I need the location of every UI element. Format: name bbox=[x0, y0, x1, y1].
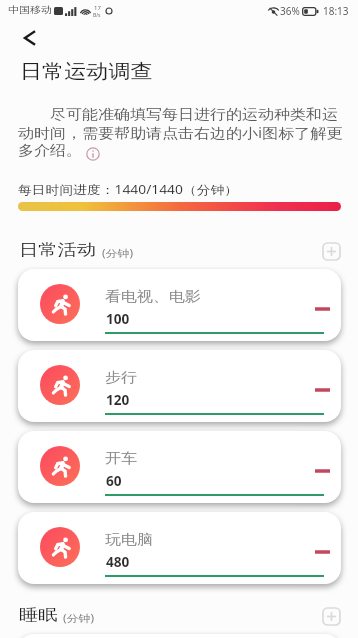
staticText: 120 bbox=[106, 390, 130, 409]
staticText: 480 bbox=[106, 552, 130, 571]
staticText: 睡眠 bbox=[19, 604, 58, 622]
staticText: B/s bbox=[93, 12, 101, 19]
staticText: 100 bbox=[106, 309, 130, 328]
button[interactable]: Add bbox=[322, 607, 341, 626]
staticText: 60 bbox=[106, 471, 122, 490]
button[interactable]: 开车 bbox=[18, 431, 341, 503]
staticText: 看电视、电影 bbox=[105, 288, 201, 305]
button[interactable]: Remove bbox=[312, 461, 332, 481]
button[interactable]: Remove bbox=[312, 299, 332, 319]
button[interactable]: Remove bbox=[312, 542, 332, 562]
button[interactable]: Remove bbox=[312, 380, 332, 400]
button[interactable]: 玩电脑 bbox=[18, 512, 341, 584]
staticText: 开车 bbox=[105, 450, 137, 467]
staticText: 日常活动 bbox=[19, 239, 97, 257]
button[interactable]: 看电视、电影 bbox=[18, 269, 341, 341]
staticText: 18:13 bbox=[323, 4, 349, 18]
staticText: 每日时间进度：1440/1440（分钟） bbox=[18, 181, 239, 197]
button[interactable]: 步行 bbox=[18, 350, 341, 422]
staticText: 动时间，需要帮助请点击右边的小i图标了解更 bbox=[18, 123, 343, 142]
staticText: 日常运动调查 bbox=[20, 60, 153, 85]
button[interactable]: Add bbox=[322, 242, 341, 261]
staticText: 尽可能准确填写每日进行的运动种类和运 bbox=[18, 104, 338, 123]
staticText: 玩电脑 bbox=[105, 531, 153, 548]
staticText: (分钟) bbox=[102, 246, 134, 259]
staticText: 17 bbox=[94, 4, 101, 12]
button[interactable]: Back bbox=[16, 25, 42, 51]
staticText: 36% bbox=[280, 4, 300, 18]
staticText: 多介绍。 bbox=[18, 142, 82, 159]
staticText: 中国移动 bbox=[8, 4, 52, 16]
staticText: (分钟) bbox=[63, 611, 95, 624]
button[interactable]: Info bbox=[86, 147, 100, 161]
staticText: 步行 bbox=[105, 369, 137, 386]
